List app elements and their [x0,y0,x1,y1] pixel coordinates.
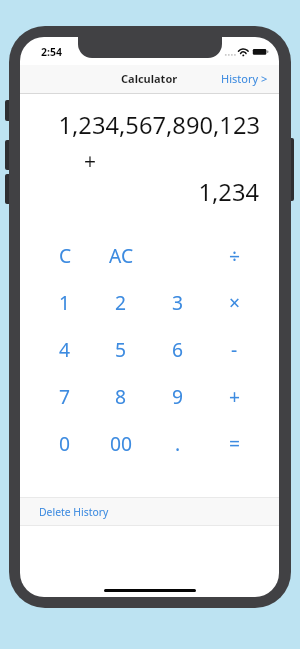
staticText: ÷ [229,242,241,268]
button[interactable]: . [149,419,206,466]
button[interactable]: × [206,278,263,325]
button[interactable]: AC [93,231,149,278]
button[interactable]: Delete History [20,497,279,526]
staticText: × [229,289,241,315]
staticText: C [59,242,72,268]
staticText: 1 [59,289,71,315]
button[interactable]: 5 [93,325,149,372]
button[interactable]: 0 [37,419,93,466]
staticText: History > [221,71,268,86]
staticText: 1,234 [20,176,259,208]
button[interactable]: 00 [93,419,149,466]
staticText: 00 [110,430,133,456]
staticText: 0 [59,430,71,456]
staticText: 1,234,567,890,123 [20,109,260,141]
staticText: 3 [172,289,184,315]
staticText: + [84,147,97,176]
staticText: 2:54 [41,45,62,59]
staticText: 6 [172,336,184,362]
staticText: 9 [172,383,184,409]
staticText: - [231,336,238,362]
button[interactable]: + [206,372,263,419]
button[interactable]: 7 [37,372,93,419]
staticText: 4 [59,336,71,362]
button[interactable]: 8 [93,372,149,419]
staticText: 2 [115,289,127,315]
button[interactable]: 6 [149,325,206,372]
staticText: + [229,383,241,409]
staticText: 5 [115,336,127,362]
button[interactable]: History > [211,66,279,93]
staticText: Delete History [39,505,109,519]
staticText: AC [109,242,134,268]
staticText: . [175,430,181,456]
button[interactable]: 4 [37,325,93,372]
button[interactable]: - [206,325,263,372]
staticText: 7 [59,383,71,409]
staticText: 8 [115,383,127,409]
button[interactable]: 1 [37,278,93,325]
button[interactable]: ÷ [206,231,263,278]
button[interactable]: 2 [93,278,149,325]
button[interactable]: 3 [149,278,206,325]
staticText: = [229,430,241,456]
button[interactable]: 9 [149,372,206,419]
button[interactable]: C [37,231,93,278]
staticText: Calculator [121,71,178,86]
button[interactable]: = [206,419,263,466]
